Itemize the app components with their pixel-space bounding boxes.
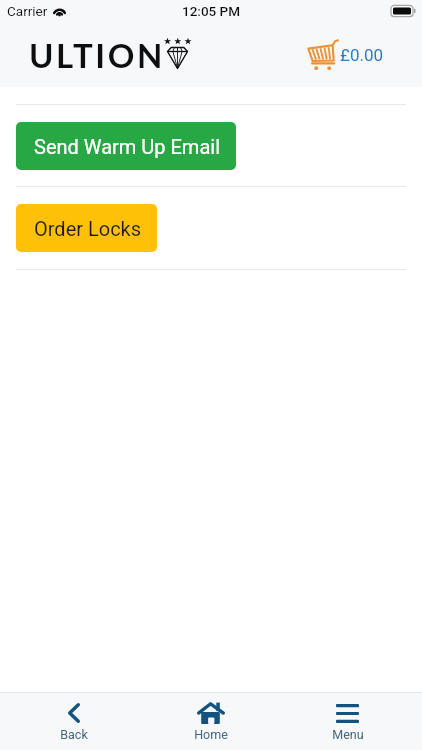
staticText: Home: [194, 727, 228, 742]
button[interactable]: Back: [6, 693, 142, 750]
staticText: Menu: [332, 727, 364, 742]
button[interactable]: Order Locks: [16, 204, 157, 252]
staticText: Carrier: [7, 3, 48, 19]
button[interactable]: Menu: [279, 693, 416, 750]
button[interactable]: Send Warm Up Email: [16, 122, 236, 170]
staticText: ULTION: [29, 35, 165, 75]
staticText: Send Warm Up Email: [34, 135, 221, 158]
staticText: 12:05 PM: [182, 3, 241, 19]
button[interactable]: Home: [142, 693, 279, 750]
button[interactable]: Cart: [308, 40, 384, 70]
staticText: Back: [60, 727, 88, 742]
staticText: Order Locks: [34, 217, 142, 240]
staticText: £0.00: [340, 45, 384, 65]
